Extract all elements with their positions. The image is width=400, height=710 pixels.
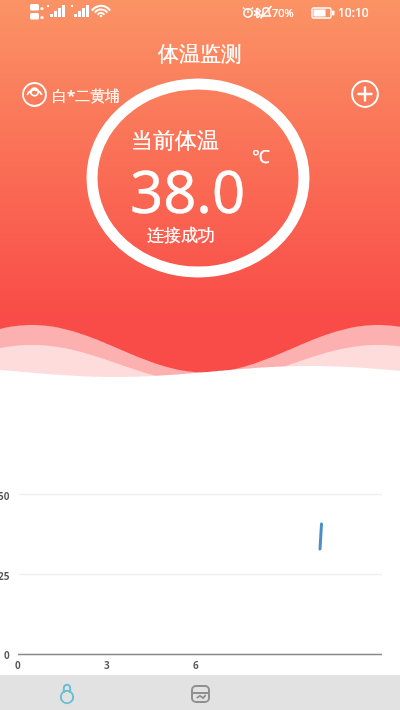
button[interactable]: Records: [134, 675, 267, 710]
staticText: 70%: [272, 5, 294, 20]
staticText: 25: [0, 569, 10, 583]
staticText: 当前体温: [131, 127, 219, 155]
button[interactable]: 白*二黄埔: [22, 82, 121, 107]
button[interactable]: Add device: [350, 79, 380, 109]
staticText: 0: [15, 658, 21, 672]
staticText: 3: [104, 658, 110, 672]
staticText: 连接成功: [147, 225, 215, 246]
staticText: ℃: [252, 144, 270, 169]
staticText: 10:10: [338, 4, 369, 20]
button[interactable]: Temperature: [0, 675, 134, 710]
staticText: 38.0: [130, 151, 246, 230]
staticText: 6: [193, 658, 199, 672]
staticText: 白*二黄埔: [52, 85, 121, 105]
staticText: 50: [0, 489, 10, 503]
staticText: 0: [4, 648, 10, 662]
staticText: 体温监测: [158, 41, 242, 67]
